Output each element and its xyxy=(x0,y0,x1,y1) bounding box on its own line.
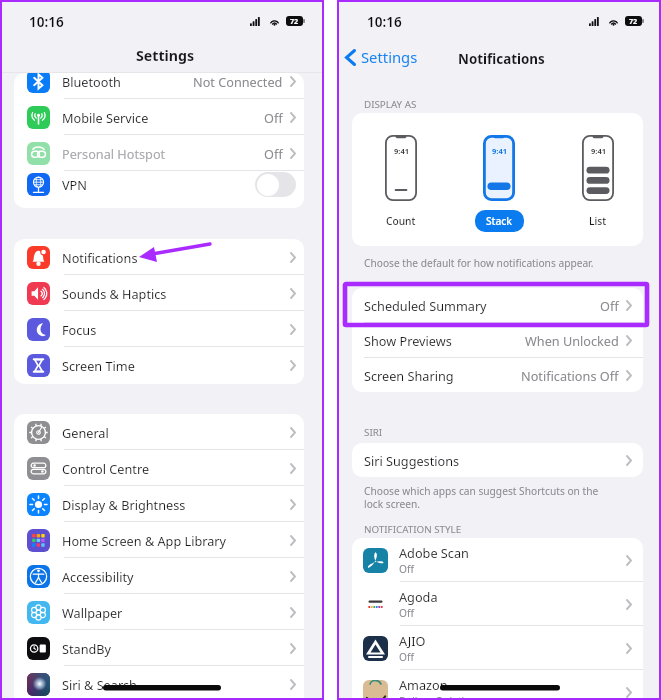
staticText: Wallpaper xyxy=(62,604,123,621)
staticText: Display & Brightness xyxy=(62,496,186,513)
staticText: Screen Sharing xyxy=(364,367,454,384)
staticText: 10:16 xyxy=(29,13,64,31)
staticText: SIRI xyxy=(364,426,383,439)
staticText: Stack xyxy=(486,214,513,228)
button[interactable]: VPN toggle xyxy=(255,172,296,197)
button[interactable]: Amazon xyxy=(352,670,643,700)
button[interactable]: Sounds & Haptics xyxy=(14,275,304,311)
staticText: Count xyxy=(386,214,416,228)
staticText: Scheduled Summary xyxy=(364,297,487,314)
button[interactable]: Screen Time xyxy=(14,347,304,383)
staticText: Siri & Search xyxy=(62,676,137,693)
staticText: DISPLAY AS xyxy=(364,98,417,111)
button[interactable]: Screen Sharing xyxy=(352,358,643,392)
staticText: Off xyxy=(399,650,414,664)
staticText: Accessibility xyxy=(62,568,134,585)
staticText: 10:16 xyxy=(367,13,402,31)
staticText: Off xyxy=(264,145,283,162)
button[interactable]: Adobe Scan xyxy=(352,538,643,582)
staticText: Mobile Service xyxy=(62,109,149,126)
staticText: 9:41 xyxy=(394,146,409,156)
button[interactable]: Control Centre xyxy=(14,450,304,486)
button[interactable]: StandBy xyxy=(14,630,304,666)
staticText: 72 xyxy=(629,16,638,26)
button[interactable]: Siri & Search xyxy=(14,666,304,700)
staticText: Control Centre xyxy=(62,460,150,477)
staticText: Off xyxy=(399,562,414,576)
staticText: Not Connected xyxy=(193,73,283,90)
staticText: AJIO xyxy=(399,632,426,649)
staticText: Choose the default for how notifications… xyxy=(364,256,594,270)
staticText: VPN xyxy=(62,176,87,193)
staticText: Siri Suggestions xyxy=(364,452,460,469)
staticText: Bluetooth xyxy=(62,73,121,90)
staticText: Show Previews xyxy=(364,332,452,349)
staticText: Screen Time xyxy=(62,357,135,374)
button[interactable]: Mobile Service xyxy=(14,99,304,135)
staticText: Deliver Quietly xyxy=(399,694,470,700)
button[interactable]: Home Screen & App Library xyxy=(14,522,304,558)
button[interactable]: Siri Suggestions xyxy=(352,443,643,477)
staticText: Agoda xyxy=(399,588,438,605)
staticText: Amazon xyxy=(399,676,448,693)
button[interactable]: 9:41 xyxy=(461,135,537,232)
staticText: Notifications Off xyxy=(521,367,619,384)
staticText: 9:41 xyxy=(591,146,606,156)
staticText: When Unlocked xyxy=(525,332,619,349)
button[interactable]: 9:41 xyxy=(363,135,439,232)
staticText: StandBy xyxy=(62,640,112,657)
staticText: Notifications xyxy=(62,249,138,266)
staticText: Focus xyxy=(62,321,97,338)
staticText: Off xyxy=(399,606,414,620)
staticText: Off xyxy=(600,297,619,314)
staticText: General xyxy=(62,424,109,441)
staticText: 72 xyxy=(290,16,299,26)
button[interactable]: AJIO xyxy=(352,626,643,670)
staticText: NOTIFICATION STYLE xyxy=(364,523,462,536)
staticText: Settings xyxy=(361,47,418,67)
button[interactable]: Focus xyxy=(14,311,304,347)
staticText: Adobe Scan xyxy=(399,544,469,561)
staticText: Home Screen & App Library xyxy=(62,532,227,549)
button[interactable]: Settings xyxy=(345,47,418,67)
staticText: List xyxy=(589,214,607,228)
button[interactable]: Show Previews xyxy=(352,323,643,358)
button[interactable]: Bluetooth xyxy=(14,73,304,99)
staticText: Sounds & Haptics xyxy=(62,285,167,302)
button[interactable]: General xyxy=(14,414,304,450)
staticText: Notifications xyxy=(458,50,545,68)
staticText: Settings xyxy=(136,46,195,65)
button[interactable]: Agoda xyxy=(352,582,643,626)
button[interactable]: Display & Brightness xyxy=(14,486,304,522)
button[interactable]: Notifications xyxy=(14,239,304,275)
staticText: Personal Hotspot xyxy=(62,145,166,162)
staticText: 9:41 xyxy=(492,146,507,156)
button[interactable]: 9:41 xyxy=(560,135,636,232)
staticText: Off xyxy=(264,109,283,126)
staticText: Choose which apps can suggest Shortcuts … xyxy=(364,484,599,511)
button[interactable]: Scheduled Summary xyxy=(352,288,643,323)
button[interactable]: VPN xyxy=(14,171,304,198)
button[interactable]: Personal Hotspot xyxy=(14,135,304,171)
button[interactable]: Wallpaper xyxy=(14,594,304,630)
button[interactable]: Accessibility xyxy=(14,558,304,594)
